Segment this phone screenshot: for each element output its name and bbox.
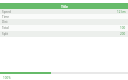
staticText: Title (61, 4, 68, 9)
staticText: 12 km (117, 10, 126, 14)
button[interactable]: Split (0, 31, 128, 37)
staticText: Dist (2, 20, 8, 24)
button[interactable]: Total (0, 25, 128, 31)
staticText: 200 (120, 32, 126, 36)
staticText: 100% (3, 76, 11, 80)
staticText: Split (2, 32, 9, 36)
staticText: Speed (2, 10, 11, 14)
staticText: Total (2, 26, 9, 30)
button[interactable]: Speed (0, 9, 128, 14)
staticText: Time (2, 15, 9, 19)
button[interactable]: Time (0, 14, 128, 19)
button[interactable]: Dist (0, 19, 128, 25)
staticText: 100 (120, 26, 126, 30)
